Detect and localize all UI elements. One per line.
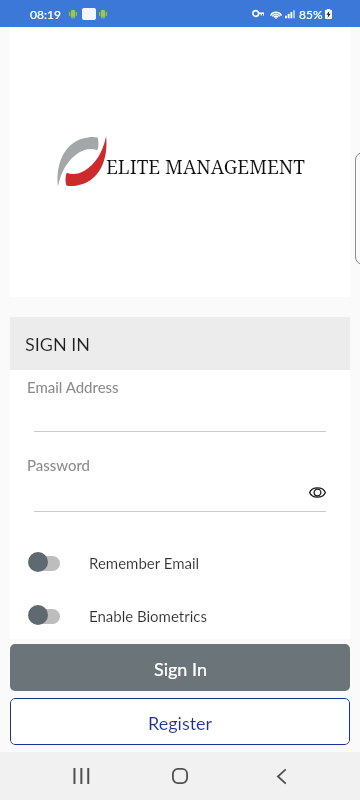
staticText: 08:19	[30, 7, 61, 21]
button[interactable]: Sign In	[10, 644, 350, 691]
staticText: Email Address	[27, 378, 119, 396]
staticText: Password	[27, 456, 90, 474]
button[interactable]: Home	[150, 752, 210, 800]
button[interactable]: Register	[10, 698, 350, 745]
button[interactable]: Show password	[305, 480, 329, 504]
staticText: ELITE MANAGEMENT	[106, 154, 306, 180]
staticText: Sign In	[154, 658, 207, 680]
button[interactable]: Remember Email	[10, 549, 350, 571]
button[interactable]: Recent apps	[50, 752, 110, 800]
staticText: Register	[148, 712, 213, 734]
button[interactable]: Back	[251, 752, 311, 800]
button[interactable]: Enable Biometrics	[10, 602, 350, 624]
staticText: 85%	[299, 7, 323, 21]
staticText: Enable Biometrics	[89, 607, 207, 625]
staticText: Remember Email	[89, 554, 200, 572]
staticText: SIGN IN	[25, 333, 91, 355]
